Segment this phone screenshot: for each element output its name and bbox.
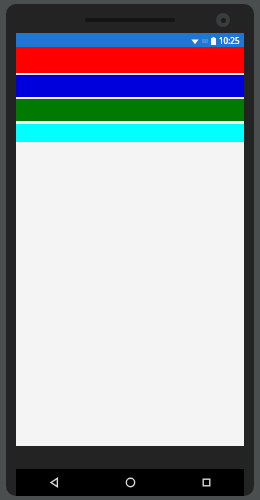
button[interactable]: Recent apps bbox=[168, 469, 244, 496]
staticText: 10:25 bbox=[219, 35, 240, 46]
button[interactable]: Back bbox=[16, 469, 92, 496]
button[interactable]: Home bbox=[92, 469, 168, 496]
